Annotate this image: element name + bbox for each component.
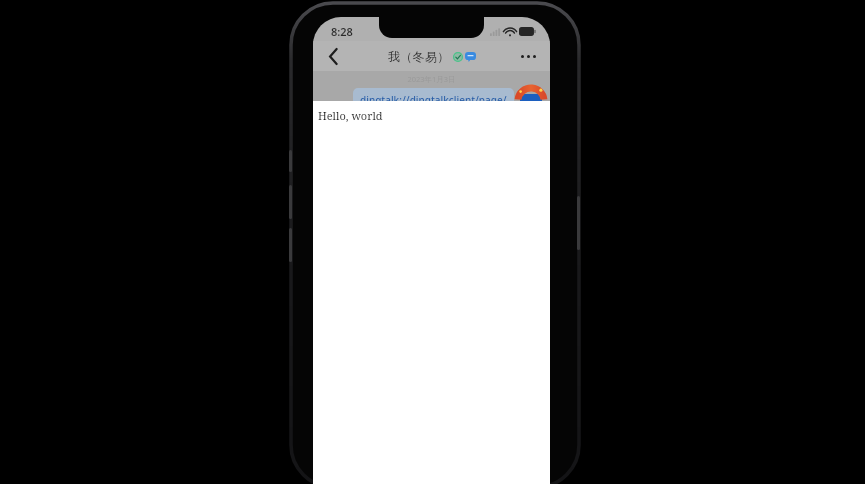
staticText: 2023年1月3日 <box>407 74 456 84</box>
button[interactable]: More options <box>514 43 542 69</box>
button[interactable]: Avatar 冬易 <box>518 88 544 114</box>
staticText: 8:28 <box>331 24 353 39</box>
button[interactable]: Back <box>319 42 347 70</box>
staticText: 我（冬易） <box>388 49 450 64</box>
staticText: dingtalk://dingtalkclient/page/ <box>360 93 507 107</box>
staticText: Hello, world <box>318 108 383 123</box>
staticText: 冬易 <box>524 100 538 109</box>
button[interactable]: dingtalk://dingtalkclient/page/ <box>353 88 514 112</box>
button[interactable]: 我（冬易） <box>388 49 476 64</box>
